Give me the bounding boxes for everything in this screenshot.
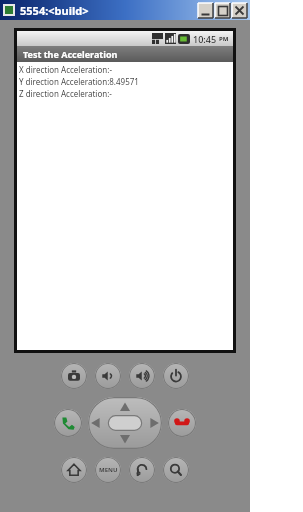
staticText: 10:45 [193, 33, 217, 45]
staticText: Test the Acceleration [23, 48, 118, 60]
button[interactable]: Power [163, 363, 189, 389]
button[interactable]: Minimize [198, 3, 213, 18]
button[interactable]: Search [163, 457, 189, 483]
button[interactable]: Back [129, 457, 155, 483]
staticText: X direction Acceleration:- [19, 64, 113, 75]
staticText: 5554:<build> [20, 3, 89, 18]
button[interactable]: Volume down [95, 363, 121, 389]
staticText: PM [219, 35, 229, 43]
button[interactable]: Maximize [215, 3, 230, 18]
button[interactable]: MENU [95, 457, 121, 483]
staticText: Y direction Acceleration:8.49571 [19, 76, 139, 87]
button[interactable]: Volume up [129, 363, 155, 389]
button[interactable]: End call [168, 409, 196, 437]
staticText: MENU [99, 466, 118, 474]
button[interactable]: Directional pad [88, 397, 162, 449]
button[interactable]: Camera [61, 363, 87, 389]
button[interactable]: Home [61, 457, 87, 483]
button[interactable]: Call [54, 409, 82, 437]
button[interactable]: Close [232, 3, 247, 18]
staticText: Z direction Acceleration:- [19, 88, 112, 99]
